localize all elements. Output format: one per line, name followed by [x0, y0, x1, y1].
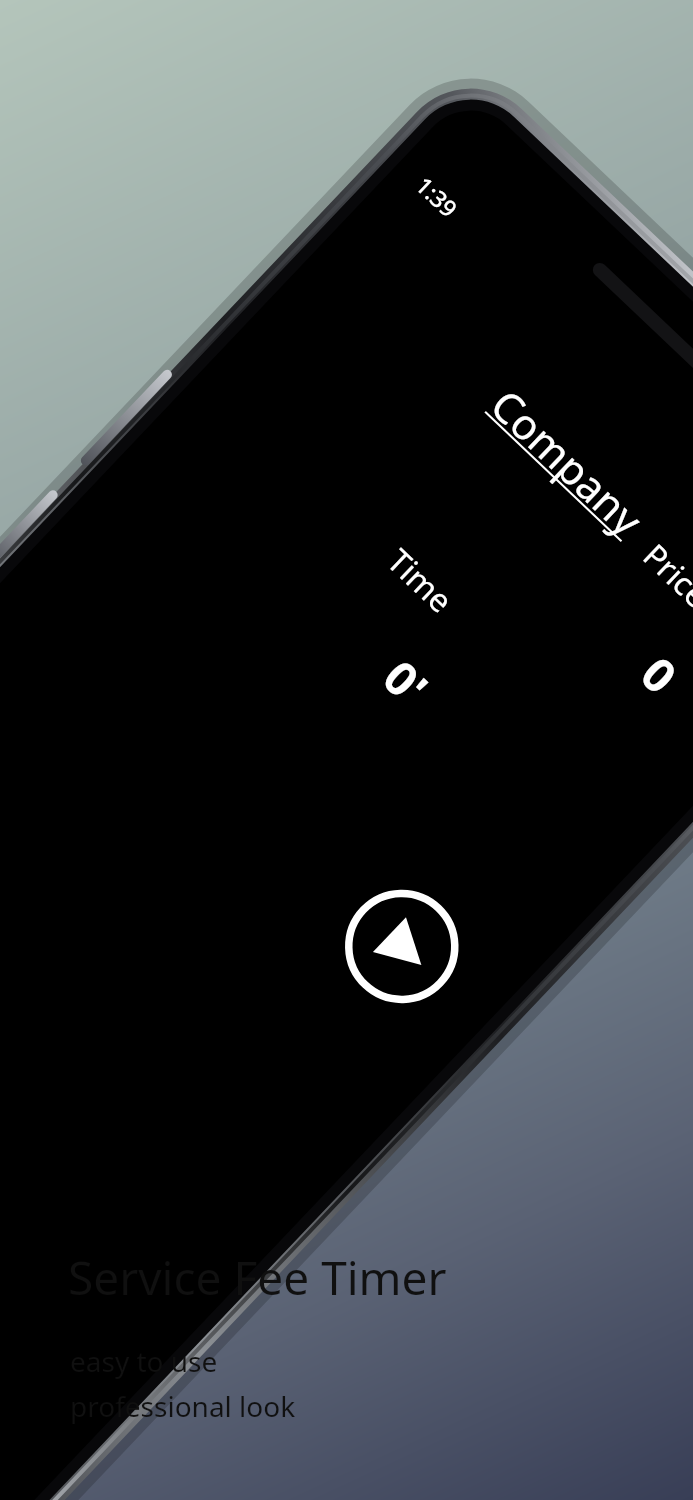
button[interactable]: Start timer — [600, 676, 693, 772]
